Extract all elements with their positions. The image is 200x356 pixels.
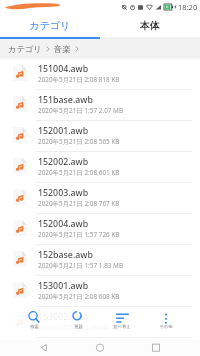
staticText: 2020年5月21日 2:08 818 KB: [38, 75, 120, 84]
staticText: 153002.awb: [38, 311, 89, 323]
button[interactable]: 152002.awb: [0, 152, 200, 183]
staticText: 2020年5月21日 1:57 1.83 MB: [38, 261, 124, 270]
staticText: 検索: [30, 324, 39, 329]
staticText: 152001.awb: [38, 125, 89, 137]
staticText: 音楽: [54, 44, 71, 54]
button[interactable]: 検索: [12, 310, 56, 332]
button[interactable]: 更新: [56, 310, 100, 332]
staticText: 151base.awb: [38, 94, 93, 106]
button[interactable]: 153001.awb: [0, 276, 200, 307]
button[interactable]: カテゴリ: [0, 14, 100, 37]
button[interactable]: Back: [33, 340, 55, 356]
button[interactable]: 153002.awb: [0, 307, 200, 338]
staticText: カテゴリ: [8, 44, 42, 54]
button[interactable]: Home: [89, 340, 111, 356]
staticText: 152002.awb: [38, 156, 89, 168]
button[interactable]: 152004.awb: [0, 214, 200, 245]
staticText: 2020年5月21日 1:57 726 KB: [38, 230, 120, 239]
staticText: 152004.awb: [38, 218, 89, 230]
button[interactable]: Recents: [145, 340, 167, 356]
button[interactable]: その他: [144, 310, 188, 332]
button[interactable]: 151004.awb: [0, 59, 200, 90]
staticText: その他: [159, 324, 173, 329]
button[interactable]: 152003.awb: [0, 183, 200, 214]
staticText: 並べ替え: [113, 324, 131, 329]
staticText: 153001.awb: [38, 280, 89, 292]
staticText: 152003.awb: [38, 187, 89, 199]
staticText: 本体: [140, 20, 160, 32]
staticText: 18:20: [178, 2, 198, 12]
staticText: 2020年5月21日 1:57 2.07 MB: [38, 106, 124, 115]
staticText: 2020年5月21日 2:08 565 KB: [38, 137, 120, 146]
staticText: 2020年5月21日 2:08 601 KB: [38, 168, 120, 177]
button[interactable]: 本体: [100, 14, 200, 37]
staticText: 152base.awb: [38, 249, 93, 261]
staticText: カテゴリ: [29, 19, 71, 32]
button[interactable]: 並べ替え: [100, 310, 144, 332]
staticText: 2020年5月21日 2:08 767 KB: [38, 199, 120, 208]
staticText: 2020年5月21日 2:08 640 KB: [38, 323, 120, 332]
button[interactable]: 151base.awb: [0, 90, 200, 121]
staticText: 更新: [74, 324, 83, 329]
button[interactable]: 152base.awb: [0, 245, 200, 276]
staticText: 2020年5月21日 2:08 608 KB: [38, 292, 120, 301]
button[interactable]: 152001.awb: [0, 121, 200, 152]
staticText: 151004.awb: [38, 63, 89, 75]
